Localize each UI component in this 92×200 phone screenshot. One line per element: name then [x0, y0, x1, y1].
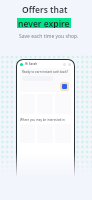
- staticText: Save each time you shop.: [19, 33, 79, 40]
- staticText: Hi Sarah: [25, 62, 38, 66]
- staticText: Ready to earn instant cash back?: [22, 70, 68, 74]
- staticText: never expire: [18, 18, 70, 28]
- staticText: Where you may be interested in: [20, 118, 65, 122]
- staticText: Offers that: [22, 4, 68, 16]
